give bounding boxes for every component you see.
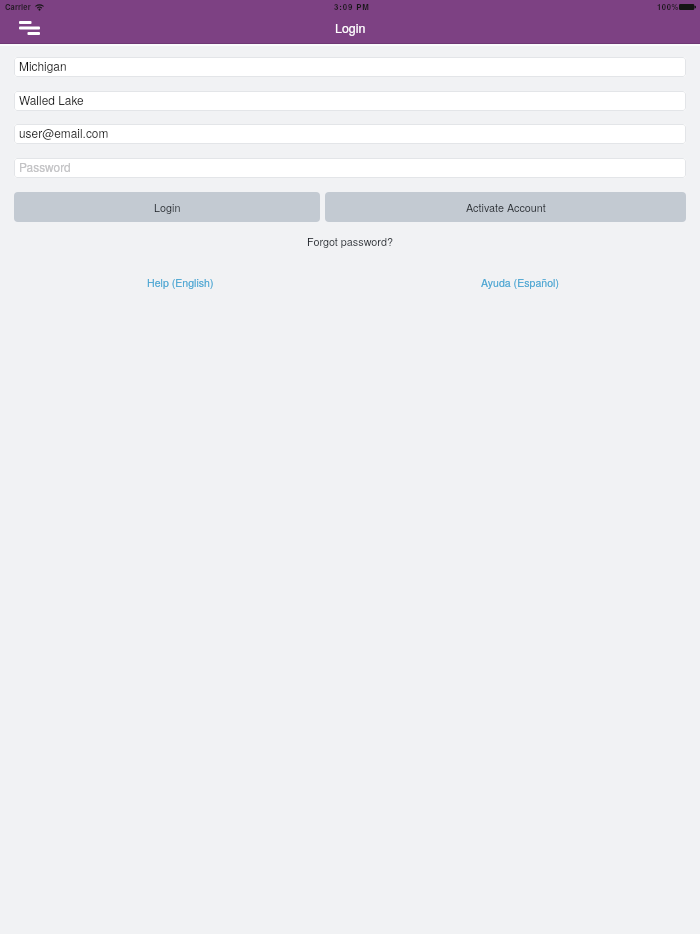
staticText: Login xyxy=(335,19,366,37)
staticText: Walled Lake xyxy=(19,91,84,108)
button[interactable]: Activate Account xyxy=(325,192,686,222)
button[interactable]: Ayuda (Español) xyxy=(478,273,562,292)
staticText: Michigan xyxy=(19,57,67,74)
button[interactable]: Password xyxy=(14,158,686,178)
button[interactable]: Open navigation menu xyxy=(14,16,44,41)
staticText: user@email.com xyxy=(19,124,109,141)
staticText: Login xyxy=(154,200,181,215)
staticText: Ayuda (Español) xyxy=(481,275,559,290)
staticText: Carrier xyxy=(5,1,31,12)
button[interactable]: Michigan xyxy=(14,57,686,77)
staticText: Forgot password? xyxy=(307,234,393,249)
staticText: 100% xyxy=(657,1,679,12)
staticText: 3:09 PM xyxy=(334,1,370,12)
button[interactable]: Help (English) xyxy=(144,273,217,292)
staticText: Help (English) xyxy=(147,275,214,290)
button[interactable]: Forgot password? xyxy=(305,233,395,250)
staticText: Activate Account xyxy=(466,200,546,215)
staticText: Password xyxy=(19,158,71,175)
button[interactable]: Walled Lake xyxy=(14,91,686,111)
button[interactable]: Login xyxy=(14,192,320,222)
button[interactable]: user@email.com xyxy=(14,124,686,144)
